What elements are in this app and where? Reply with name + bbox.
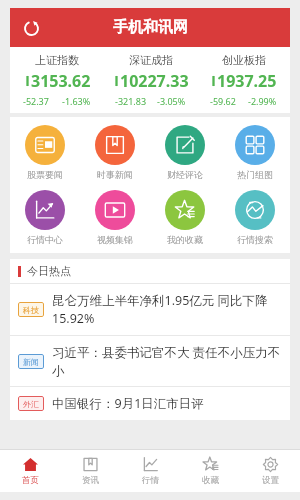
staticText: -1.63% xyxy=(62,95,91,107)
staticText: 我的收藏 xyxy=(167,234,203,245)
button[interactable]: 我的收藏 xyxy=(150,190,220,245)
button[interactable]: Refresh xyxy=(16,13,46,43)
button[interactable]: 行情搜索 xyxy=(220,190,290,245)
staticText: 上证指数 xyxy=(35,53,79,67)
staticText: 行情中心 xyxy=(27,234,63,245)
button[interactable]: 设置 xyxy=(240,450,300,492)
button[interactable]: 上证指数 xyxy=(10,53,104,107)
staticText: 视频集锦 xyxy=(97,234,133,245)
staticText: 行情 xyxy=(142,475,159,486)
staticText: 手机和讯网 xyxy=(113,18,188,37)
staticText: 今日热点 xyxy=(27,264,71,278)
button[interactable]: 科技 xyxy=(10,284,290,335)
button[interactable]: 时事新闻 xyxy=(80,125,150,180)
button[interactable]: 行情 xyxy=(120,450,180,492)
staticText: 10227.33 xyxy=(120,70,189,92)
button[interactable]: 行情中心 xyxy=(10,190,80,245)
staticText: 习近平：县委书记官不大 责任不小压力不小 xyxy=(52,344,282,378)
staticText: -2.99% xyxy=(248,95,277,107)
staticText: 设置 xyxy=(262,475,279,486)
button[interactable]: 热门组图 xyxy=(220,125,290,180)
staticText: 首页 xyxy=(22,475,39,486)
staticText: 时事新闻 xyxy=(97,169,133,180)
button[interactable]: 外汇 xyxy=(10,387,290,420)
staticText: 深证成指 xyxy=(129,53,173,67)
button[interactable]: 股票要闻 xyxy=(10,125,80,180)
button[interactable]: 首页 xyxy=(0,450,60,492)
staticText: -3.05% xyxy=(157,95,186,107)
staticText: 创业板指 xyxy=(222,53,266,67)
button[interactable]: 创业板指 xyxy=(197,53,290,107)
staticText: 中国银行：9月1日汇市日评 xyxy=(52,395,204,412)
staticText: -59.62 xyxy=(210,95,236,107)
button[interactable]: 资讯 xyxy=(60,450,120,492)
button[interactable]: 收藏 xyxy=(180,450,240,492)
staticText: 新闻 xyxy=(23,357,39,367)
button[interactable]: 新闻 xyxy=(10,336,290,386)
staticText: 昆仑万维上半年净利1.95亿元 同比下降15.92% xyxy=(52,292,282,327)
staticText: 1937.25 xyxy=(217,70,277,92)
staticText: 外汇 xyxy=(23,399,39,409)
staticText: -52.37 xyxy=(23,95,49,107)
button[interactable]: 财经评论 xyxy=(150,125,220,180)
staticText: 资讯 xyxy=(82,475,99,486)
staticText: 行情搜索 xyxy=(237,234,273,245)
staticText: 股票要闻 xyxy=(27,169,63,180)
staticText: -321.83 xyxy=(115,95,147,107)
staticText: 3153.62 xyxy=(31,70,91,92)
staticText: 科技 xyxy=(23,305,39,315)
button[interactable]: 深证成指 xyxy=(104,53,197,107)
staticText: 收藏 xyxy=(202,475,219,486)
staticText: 财经评论 xyxy=(167,169,203,180)
staticText: 热门组图 xyxy=(237,169,273,180)
button[interactable]: 视频集锦 xyxy=(80,190,150,245)
